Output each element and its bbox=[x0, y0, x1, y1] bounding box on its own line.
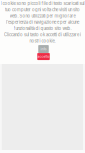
staticText: info bbox=[40, 47, 46, 51]
staticText: accetto bbox=[37, 55, 49, 58]
button[interactable]: info bbox=[38, 45, 49, 53]
staticText: funzionalità di questo sito web. bbox=[13, 26, 71, 31]
staticText: Cliccando sul tasto ok accetti di utiliz… bbox=[4, 32, 81, 37]
staticText: tuo computer ogni volta che visiti un si… bbox=[5, 7, 80, 12]
staticText: l'esperienza di navigazione e per alcune bbox=[6, 20, 79, 25]
staticText: web. Sono utilizzati per migliorare bbox=[9, 13, 75, 18]
staticText: I cookie sono piccoli file di testo scar… bbox=[0, 1, 84, 6]
staticText: nostri cookie. bbox=[29, 38, 55, 43]
button[interactable]: accetto bbox=[37, 53, 50, 60]
